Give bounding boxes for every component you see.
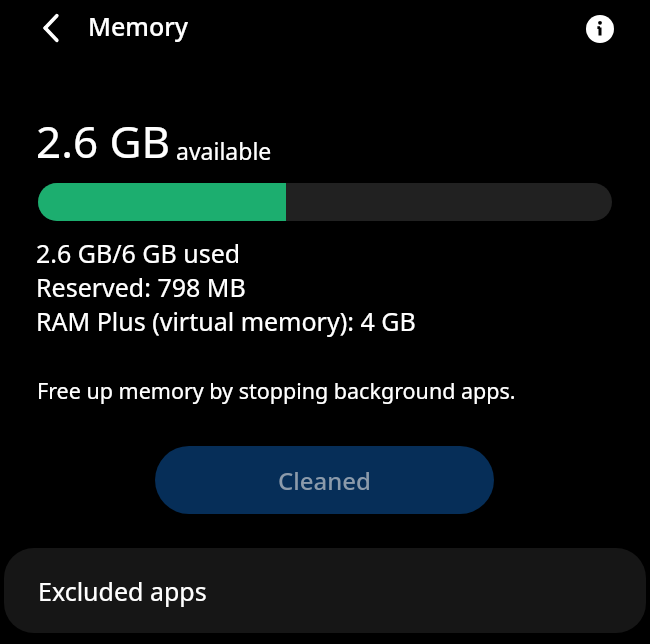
staticText: Memory xyxy=(88,9,189,43)
staticText: Excluded apps xyxy=(38,574,207,608)
button[interactable]: Excluded apps xyxy=(4,548,646,633)
staticText: Free up memory by stopping background ap… xyxy=(37,376,516,405)
staticText: Reserved: 798 MB xyxy=(36,270,246,304)
staticText: 2.6 GB/6 GB used xyxy=(36,236,241,270)
staticText: RAM Plus (virtual memory): 4 GB xyxy=(36,304,416,338)
staticText: 2.6 GB xyxy=(36,111,171,171)
button[interactable]: Cleaned xyxy=(155,446,494,514)
button[interactable]: Back xyxy=(31,8,71,48)
staticText: Cleaned xyxy=(278,464,371,497)
button[interactable]: Information xyxy=(580,9,620,49)
staticText: available xyxy=(176,135,272,166)
